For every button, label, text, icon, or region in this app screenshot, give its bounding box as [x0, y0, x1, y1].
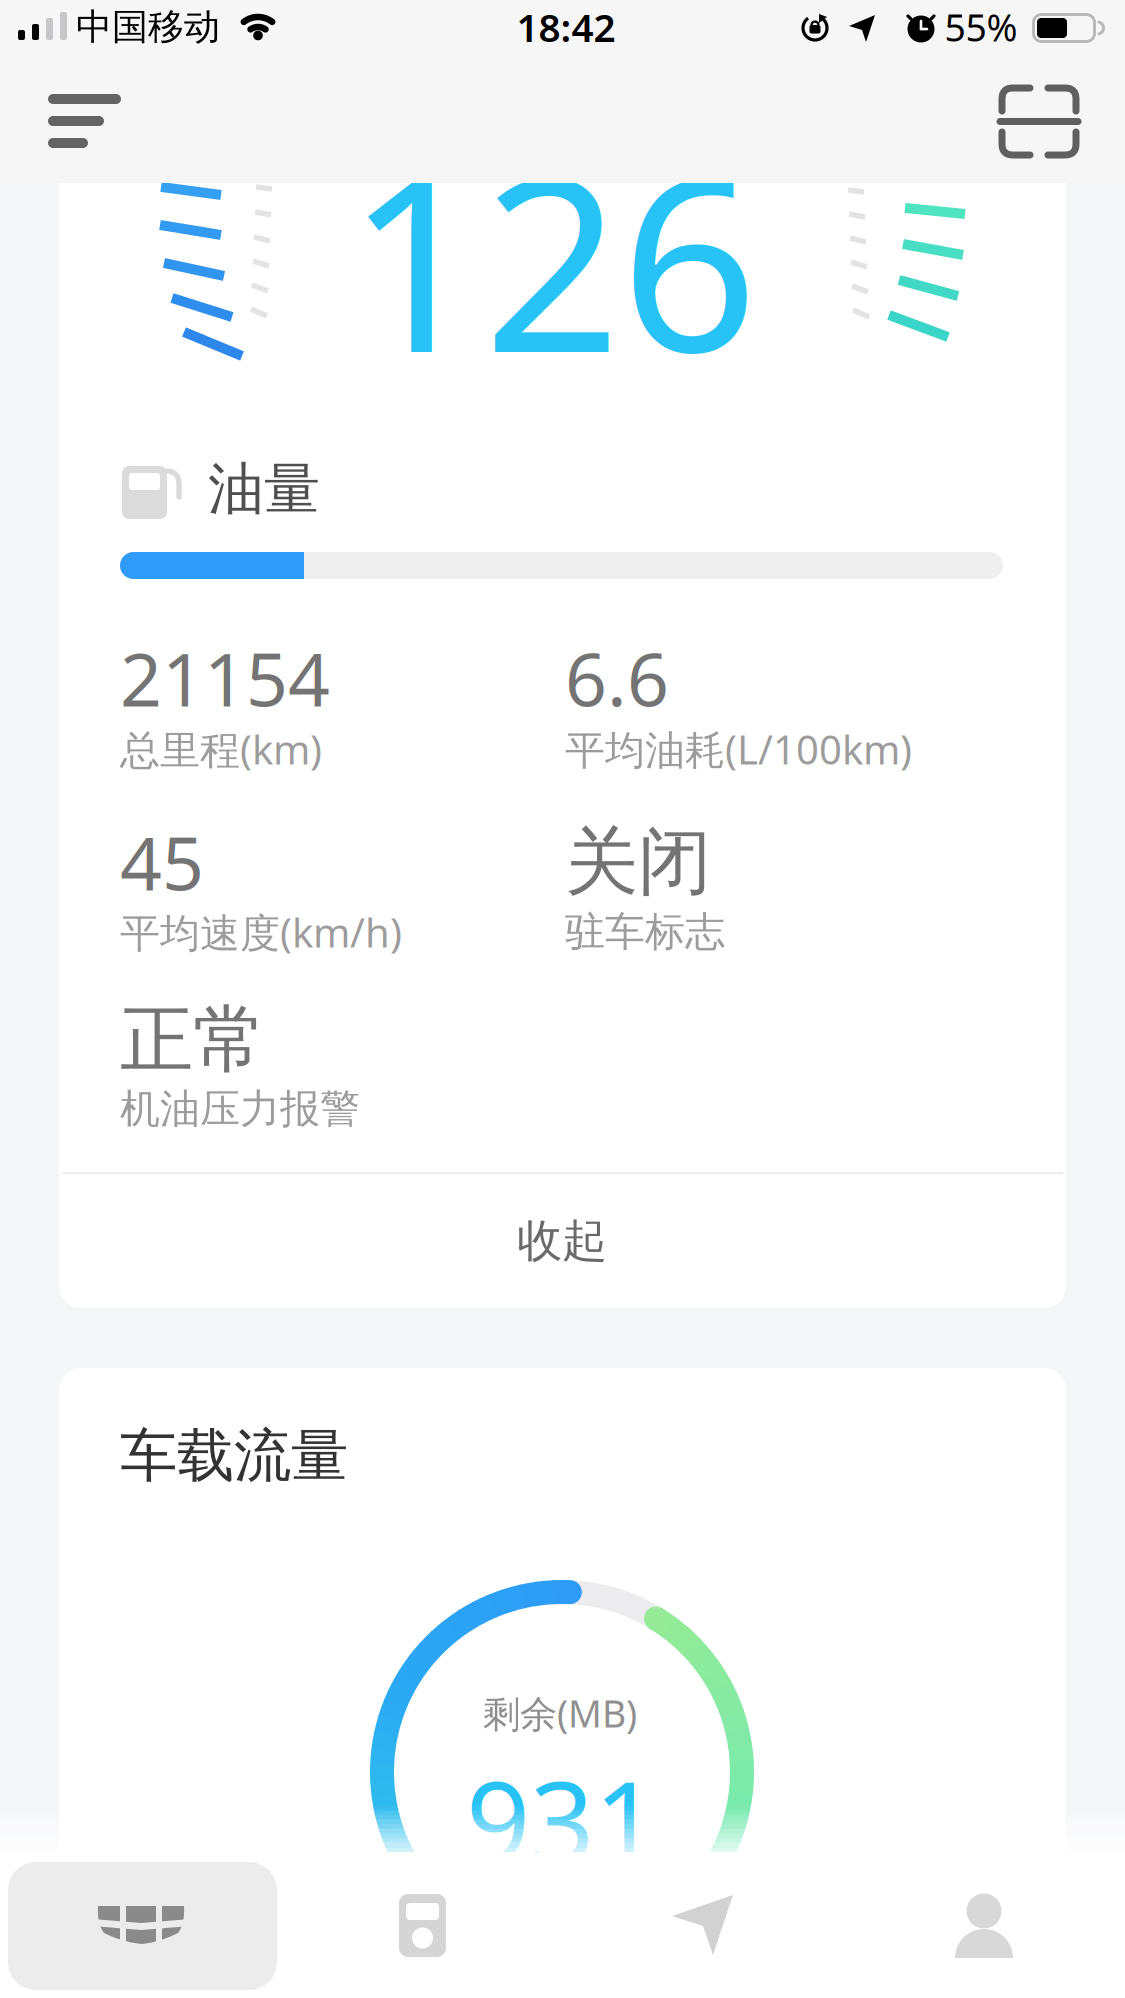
staticText: 126	[346, 100, 757, 418]
button[interactable]	[281, 1852, 562, 1998]
staticText: 21154	[120, 629, 330, 727]
button[interactable]	[843, 1852, 1124, 1998]
staticText: 关闭	[565, 817, 711, 907]
staticText: 总里程(km)	[120, 722, 322, 775]
button[interactable]: 收起	[58, 1174, 1065, 1308]
button[interactable]	[8, 1862, 277, 1990]
staticText: 931	[466, 1745, 658, 1893]
staticText: 中国移动	[76, 5, 220, 49]
staticText: 6.6	[565, 629, 669, 727]
staticText: 收起	[517, 1213, 607, 1269]
staticText: 55%	[944, 2, 1017, 52]
button[interactable]	[40, 85, 130, 155]
staticText: 平均速度(km/h)	[120, 905, 402, 958]
staticText: 45	[120, 813, 204, 911]
staticText: 驻车标志	[565, 907, 725, 956]
staticText: 车载流量	[120, 1421, 348, 1491]
staticText: 剩余(MB)	[483, 1688, 637, 1738]
staticText: 平均油耗(L/100km)	[565, 722, 912, 775]
staticText: 机油压力报警	[120, 1084, 360, 1133]
staticText: 正常	[120, 995, 266, 1085]
button[interactable]	[562, 1852, 843, 1998]
staticText: 油量	[208, 455, 320, 523]
staticText: 18:42	[516, 1, 615, 53]
button[interactable]	[995, 82, 1083, 160]
